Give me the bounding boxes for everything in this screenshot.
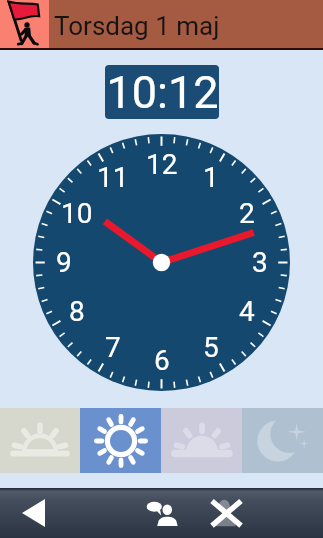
staticText: 10:12 [106, 66, 219, 119]
staticText: 6 [154, 344, 170, 377]
button[interactable]: Morning [0, 408, 80, 473]
staticText: Torsdag 1 maj [54, 11, 220, 41]
staticText: 10 [61, 197, 93, 230]
staticText: 8 [69, 295, 85, 328]
staticText: 2 [239, 197, 255, 230]
staticText: 9 [56, 246, 72, 279]
staticText: 5 [203, 331, 219, 364]
staticText: 7 [105, 331, 121, 364]
button[interactable]: Contacts [137, 488, 187, 538]
button[interactable]: Night [242, 408, 323, 473]
button[interactable]: 10:12 [105, 65, 219, 119]
staticText: 11 [97, 161, 129, 194]
staticText: 12 [146, 148, 178, 181]
button[interactable]: Holiday flag [0, 0, 49, 48]
staticText: 3 [252, 246, 268, 279]
button[interactable]: Block contact [201, 488, 251, 538]
staticText: 4 [239, 295, 255, 328]
button[interactable]: Back [8, 488, 58, 538]
button[interactable]: Day [80, 408, 161, 473]
staticText: 1 [203, 161, 219, 194]
button[interactable]: Evening [161, 408, 242, 473]
